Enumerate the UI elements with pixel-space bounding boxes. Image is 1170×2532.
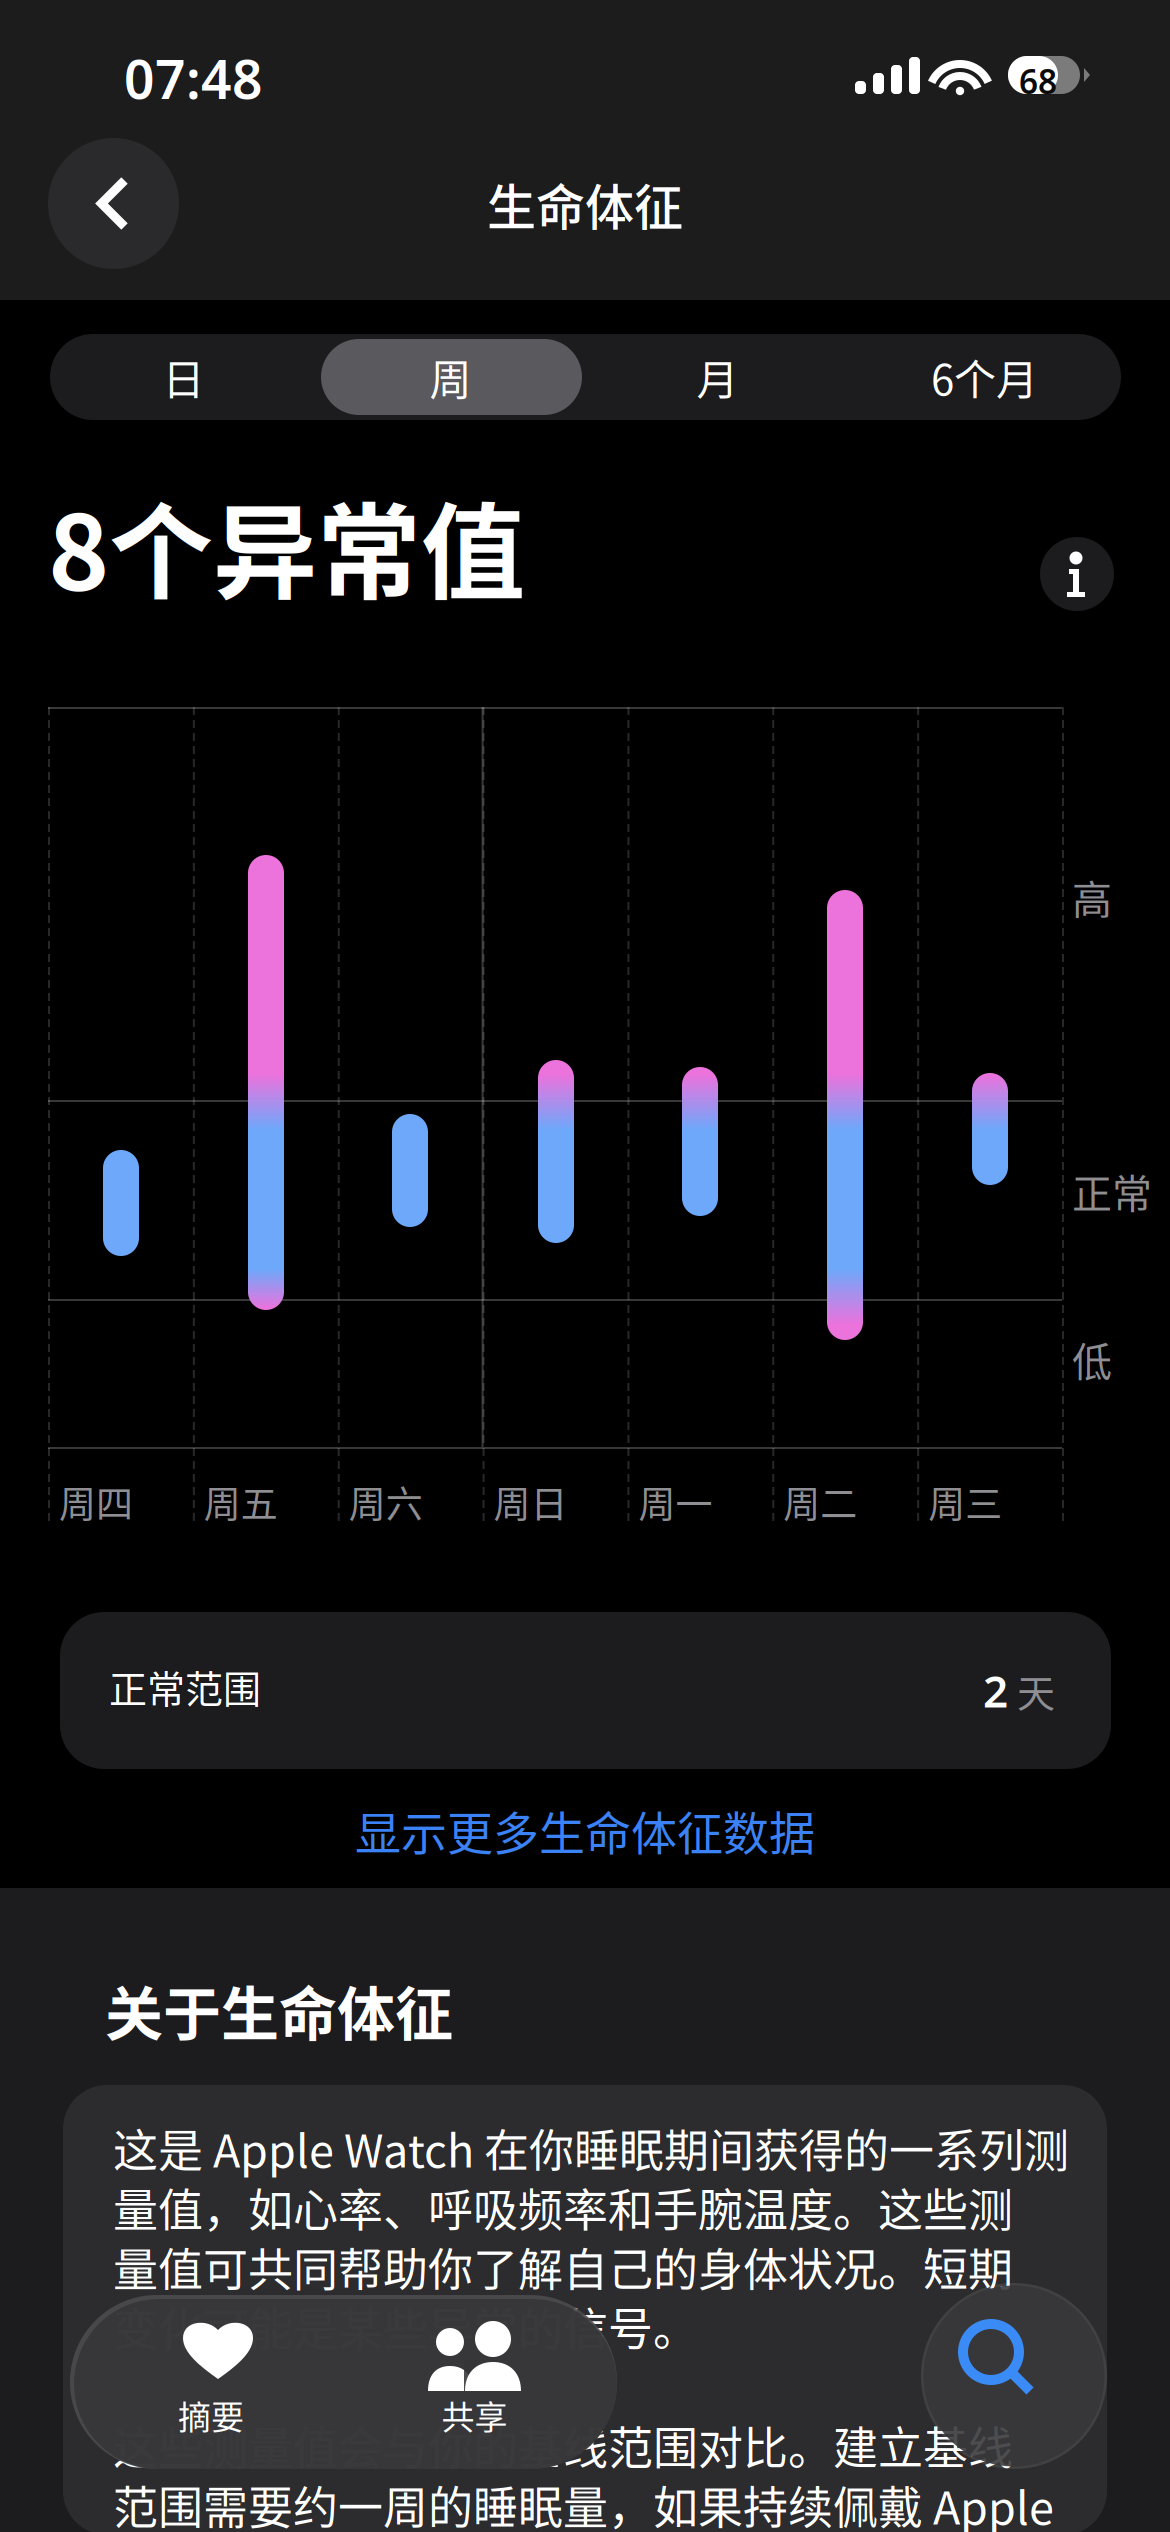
staticText: 正常	[1072, 1162, 1152, 1220]
button[interactable]: 搜索	[921, 2283, 1107, 2469]
staticText: 关于生命体征	[105, 1968, 453, 2052]
staticText: 显示更多生命体征数据	[355, 1797, 815, 1863]
staticText: 周	[429, 347, 471, 407]
button[interactable]: 返回	[48, 138, 179, 269]
staticText: 正常范围	[109, 1659, 261, 1714]
button[interactable]: 共享	[344, 2295, 617, 2469]
staticText: 生命体征	[487, 168, 683, 239]
button[interactable]: 摘要	[70, 2295, 344, 2469]
staticText: 这是 Apple Watch 在你睡眠期间获得的一系列测	[113, 2115, 1069, 2181]
staticText: 07:48	[124, 43, 263, 114]
button[interactable]: 正常范围	[60, 1612, 1111, 1769]
button[interactable]: 信息	[1040, 537, 1114, 611]
staticText: 6个月	[931, 347, 1038, 407]
button[interactable]: 周	[317, 334, 584, 420]
staticText: 量值可共同帮助你了解自己的身体状况。短期	[113, 2234, 1013, 2300]
staticText: 周四	[59, 1475, 133, 1529]
staticText: 低	[1072, 1330, 1112, 1388]
button[interactable]: 6个月	[851, 334, 1118, 420]
staticText: 周一	[638, 1475, 712, 1529]
staticText: 周二	[783, 1475, 857, 1529]
staticText: 2	[983, 1661, 1008, 1720]
staticText: 68	[1019, 59, 1057, 103]
staticText: 周五	[204, 1475, 278, 1529]
staticText: 天	[1017, 1663, 1055, 1718]
staticText: 日	[162, 347, 204, 407]
staticText: 变化可能是某些异常的信号。	[113, 2294, 698, 2359]
staticText: 摘要	[178, 2391, 244, 2439]
button[interactable]: 日	[50, 334, 317, 420]
staticText: 范围需要约一周的睡眠量，如果持续佩戴 Apple	[113, 2472, 1054, 2532]
staticText: 量值，如心率、呼吸频率和手腕温度。这些测	[113, 2175, 1013, 2240]
staticText: 8个异常值	[48, 470, 525, 621]
button[interactable]: 月	[584, 334, 851, 420]
staticText: 周三	[928, 1475, 1002, 1529]
staticText: 周六	[349, 1475, 423, 1529]
staticText: 周日	[494, 1475, 568, 1529]
staticText: 这些测量值会与你的基线范围对比。建立基线	[113, 2413, 1013, 2478]
staticText: 高	[1072, 868, 1112, 926]
staticText: 共享	[441, 2391, 507, 2439]
staticText: 月	[696, 347, 738, 407]
button[interactable]: 显示更多生命体征数据	[0, 1790, 1170, 1870]
